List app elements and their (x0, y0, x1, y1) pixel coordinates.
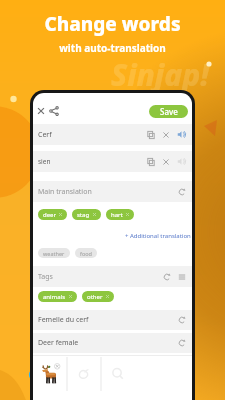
button[interactable]: food (80, 248, 92, 258)
button[interactable]: + Additional translation (123, 230, 192, 242)
staticText: Main translation (38, 187, 92, 197)
button[interactable]: Refresh (163, 273, 171, 281)
button[interactable]: Copy (147, 158, 155, 166)
button[interactable]: Refresh (178, 339, 186, 347)
staticText: deer (43, 211, 56, 219)
button[interactable]: Picture option (102, 357, 134, 391)
button[interactable]: deer (43, 209, 63, 220)
button[interactable]: Pronounce (177, 130, 186, 139)
button[interactable]: sien (38, 151, 186, 172)
staticText: other (87, 293, 103, 301)
staticText: food (80, 250, 92, 257)
button[interactable]: Refresh (178, 188, 186, 196)
button[interactable]: Tags (38, 266, 186, 287)
button[interactable]: stag (77, 209, 97, 220)
button[interactable]: Save (149, 105, 188, 118)
button[interactable]: Clear (162, 131, 170, 139)
staticText: Sinjap! (111, 54, 210, 95)
staticText: Save (160, 106, 178, 117)
button[interactable]: Selected picture (34, 357, 66, 391)
button[interactable]: Main translation (38, 181, 186, 202)
staticText: weather (43, 250, 65, 257)
staticText: with auto-translation (59, 41, 166, 55)
button[interactable]: animals (43, 291, 73, 302)
button[interactable]: Cerf (38, 124, 186, 145)
staticText: Change words (44, 11, 181, 37)
button[interactable]: Copy (147, 131, 155, 139)
staticText: hart (111, 211, 123, 219)
staticText: Tags (38, 272, 53, 282)
button[interactable]: Pronounce (177, 157, 186, 166)
staticText: Cerf (38, 130, 52, 140)
button[interactable]: hart (111, 209, 130, 220)
button[interactable]: other (87, 291, 110, 302)
button[interactable]: Femelle du cerf (38, 310, 186, 330)
staticText: animals (43, 293, 66, 301)
staticText: sien (38, 157, 51, 166)
button[interactable]: Close (34, 104, 48, 118)
button[interactable]: Refresh (178, 316, 186, 324)
staticText: + Additional translation (125, 232, 191, 240)
button[interactable]: weather (43, 248, 65, 258)
button[interactable]: Deer female (38, 333, 186, 353)
button[interactable]: Clear (162, 158, 170, 166)
button[interactable]: Share (47, 104, 61, 118)
staticText: Deer female (38, 338, 79, 348)
staticText: stag (77, 211, 90, 219)
staticText: Femelle du cerf (38, 315, 89, 325)
button[interactable]: Menu (178, 273, 186, 281)
